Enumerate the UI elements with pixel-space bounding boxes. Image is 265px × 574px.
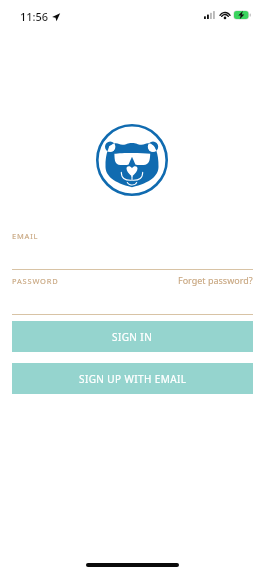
staticText: Forget password?: [178, 274, 253, 286]
staticText: SIGN UP WITH EMAIL: [79, 372, 187, 386]
staticText: SIGN IN: [112, 330, 153, 344]
staticText: EMAIL: [12, 231, 39, 241]
staticText: 11:56: [20, 9, 49, 24]
button[interactable]: Forget password?: [165, 273, 253, 287]
button[interactable]: SIGN IN: [12, 321, 253, 352]
staticText: PASSWORD: [12, 276, 59, 286]
button[interactable]: SIGN UP WITH EMAIL: [12, 363, 253, 394]
